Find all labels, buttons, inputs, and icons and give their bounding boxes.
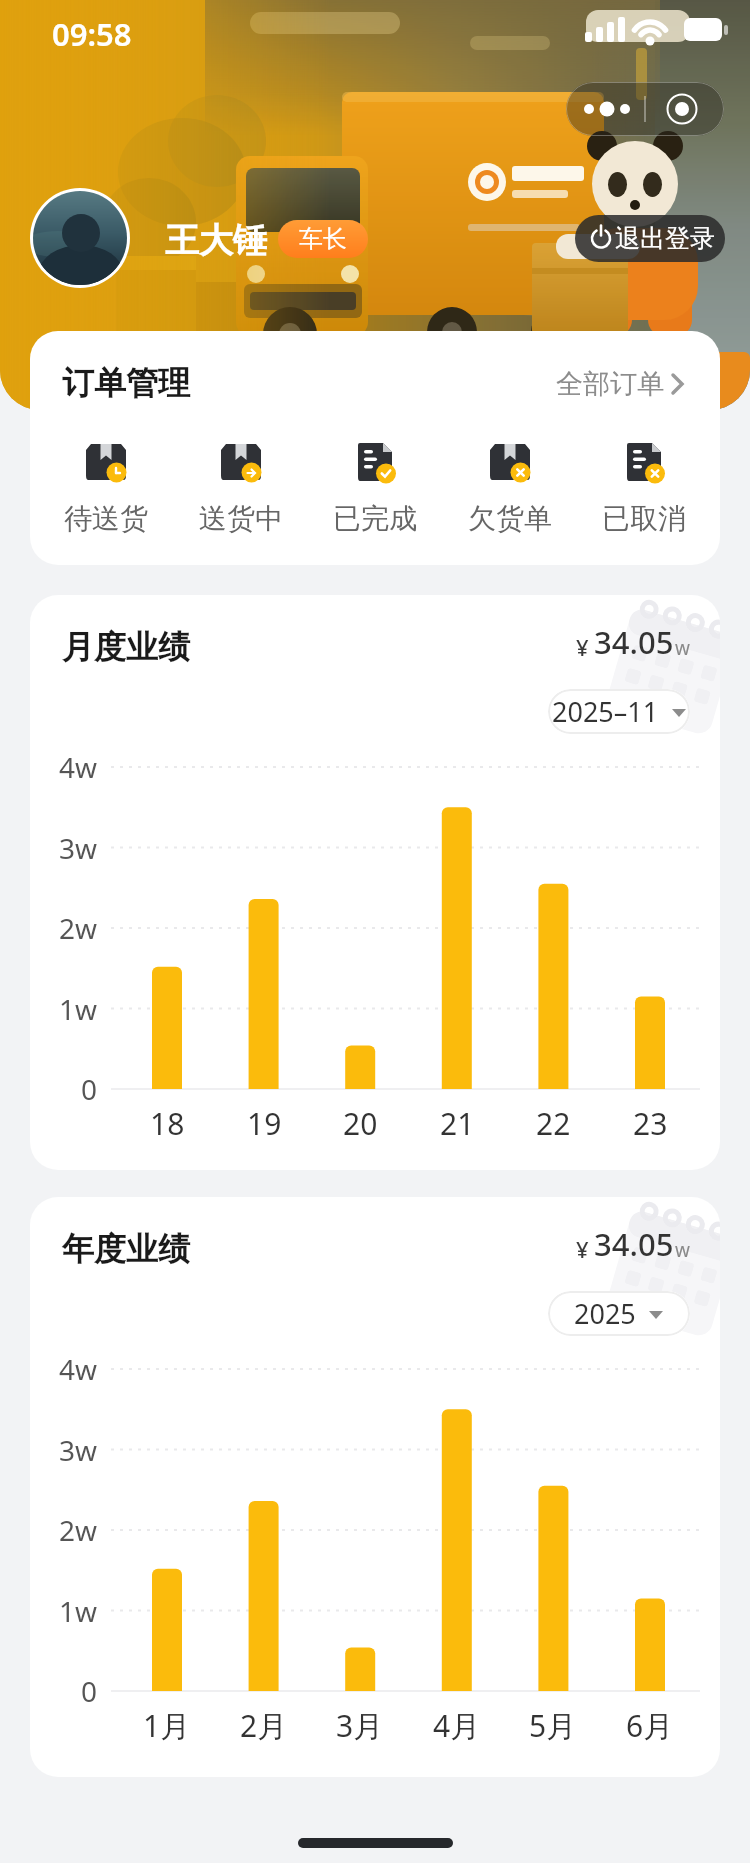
staticText: 2025–11 <box>552 693 659 730</box>
staticText: 欠货单 <box>468 501 552 536</box>
staticText: 3月 <box>336 1705 384 1745</box>
button[interactable]: 全部订单 <box>556 367 690 401</box>
staticText: 34.05 <box>594 1223 674 1265</box>
staticText: 6月 <box>626 1705 674 1745</box>
staticText: 23 <box>633 1103 668 1143</box>
button[interactable]: 2025–11 <box>548 689 690 734</box>
staticText: 5月 <box>529 1705 577 1745</box>
staticText: 18 <box>150 1103 185 1143</box>
staticText: 4月 <box>433 1705 481 1745</box>
staticText: 09:58 <box>52 13 132 55</box>
button[interactable]: 车长 <box>278 220 368 258</box>
staticText: 0 <box>81 1672 98 1710</box>
staticText: 21 <box>440 1103 475 1143</box>
staticText: 送货中 <box>199 501 283 536</box>
staticText: w <box>675 635 690 661</box>
staticText: 车长 <box>299 224 347 254</box>
staticText: 2w <box>59 909 98 947</box>
staticText: 2025 <box>574 1295 636 1332</box>
staticText: 订单管理 <box>62 363 190 403</box>
staticText: 2w <box>59 1511 98 1549</box>
button[interactable]: 送货中 <box>199 442 283 536</box>
staticText: w <box>675 1237 690 1263</box>
staticText: 3w <box>59 829 98 867</box>
staticText: 19 <box>247 1103 282 1143</box>
staticText: 1w <box>59 1592 98 1630</box>
button[interactable] <box>566 82 724 136</box>
staticText: 王大锤 <box>165 219 267 262</box>
staticText: 3w <box>59 1431 98 1469</box>
button[interactable]: 已完成 <box>333 442 417 536</box>
staticText: 月度业绩 <box>62 627 190 667</box>
staticText: 全部订单 <box>556 367 664 401</box>
button[interactable]: 2025 <box>548 1291 690 1336</box>
staticText: 22 <box>536 1103 571 1143</box>
staticText: 已完成 <box>333 501 417 536</box>
staticText: 4w <box>59 1350 98 1388</box>
button[interactable]: 退出登录 <box>575 215 725 262</box>
button[interactable]: 待送货 <box>64 442 148 536</box>
staticText: 年度业绩 <box>62 1229 190 1269</box>
staticText: 1w <box>59 990 98 1028</box>
staticText: 0 <box>81 1070 98 1108</box>
staticText: ¥ <box>576 632 589 662</box>
staticText: 4w <box>59 748 98 786</box>
staticText: 2月 <box>240 1705 288 1745</box>
staticText: 已取消 <box>602 501 686 536</box>
staticText: 退出登录 <box>615 223 715 254</box>
staticText: ¥ <box>576 1234 589 1264</box>
staticText: 34.05 <box>594 621 674 663</box>
staticText: 20 <box>343 1103 378 1143</box>
button[interactable]: 已取消 <box>602 442 686 536</box>
button[interactable]: 欠货单 <box>468 442 552 536</box>
staticText: 待送货 <box>64 501 148 536</box>
staticText: 1月 <box>143 1705 191 1745</box>
